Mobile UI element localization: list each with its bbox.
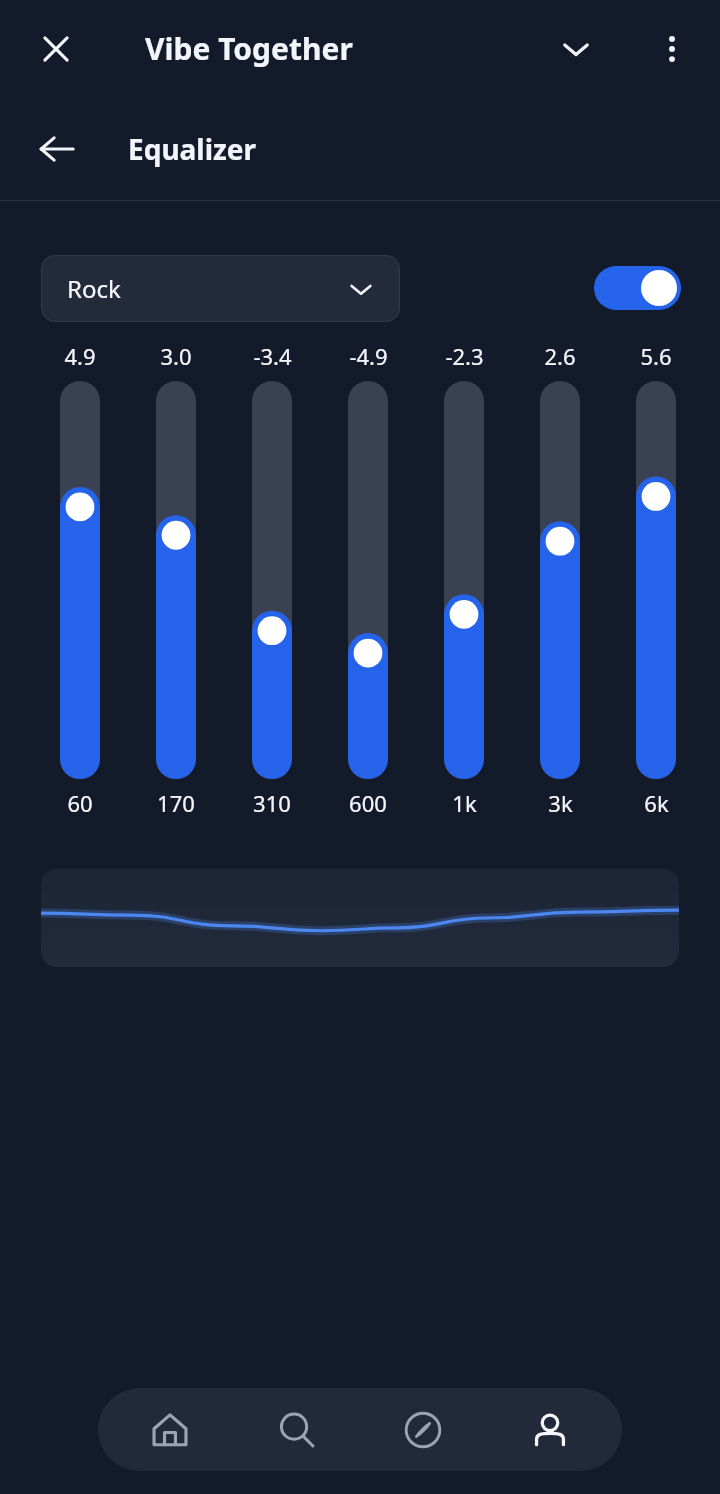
button[interactable]: Close <box>24 17 88 81</box>
button[interactable]: Rock <box>41 255 400 322</box>
staticText: Equalizer <box>128 130 257 168</box>
staticText: 4.9 <box>64 341 96 371</box>
staticText: Vibe Together <box>145 28 353 69</box>
button[interactable]: 310 band -3.4 dB <box>232 341 312 819</box>
button[interactable]: Collapse <box>543 16 609 82</box>
staticText: 6k <box>644 788 669 818</box>
staticText: -2.3 <box>445 341 484 371</box>
button[interactable]: Equalizer enabled <box>594 266 681 310</box>
staticText: 600 <box>349 788 387 818</box>
staticText: 3.0 <box>160 341 192 371</box>
button[interactable]: 170 band 3.0 dB <box>136 341 216 819</box>
button[interactable]: 3k band 2.6 dB <box>520 341 600 819</box>
staticText: -3.4 <box>253 341 292 371</box>
staticText: 5.6 <box>640 341 672 371</box>
staticText: 310 <box>253 788 291 818</box>
button[interactable]: Profile <box>495 1388 605 1471</box>
staticText: 3k <box>548 788 573 818</box>
button[interactable]: Back <box>24 116 90 182</box>
button[interactable]: Explore <box>368 1388 478 1471</box>
button[interactable]: Home <box>115 1388 225 1471</box>
button[interactable]: Equalizer response curve <box>41 869 679 967</box>
staticText: 2.6 <box>544 341 576 371</box>
staticText: 170 <box>157 788 195 818</box>
staticText: 60 <box>67 788 93 818</box>
staticText: -4.9 <box>349 341 388 371</box>
button[interactable]: Search <box>242 1388 352 1471</box>
button[interactable]: 6k band 5.6 dB <box>616 341 696 819</box>
staticText: 1k <box>452 788 477 818</box>
staticText: Rock <box>67 272 121 305</box>
button[interactable]: 1k band -2.3 dB <box>424 341 504 819</box>
button[interactable]: More options <box>640 17 704 81</box>
button[interactable]: 60 band 4.9 dB <box>40 341 120 819</box>
button[interactable]: 600 band -4.9 dB <box>328 341 408 819</box>
